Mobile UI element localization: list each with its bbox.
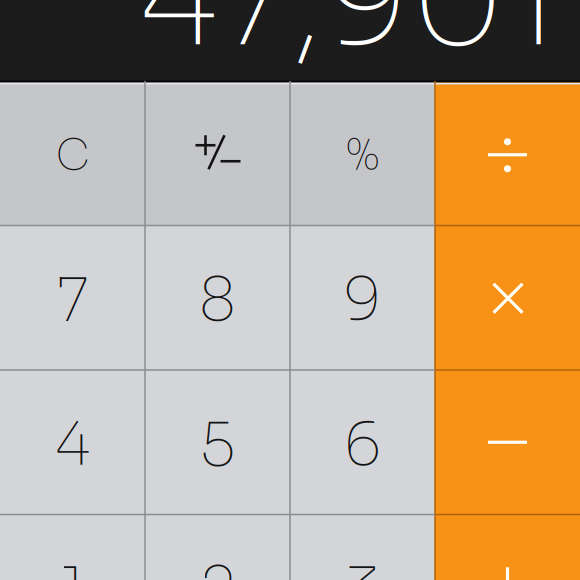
staticText: C: [55, 128, 89, 182]
staticText: 3: [344, 551, 380, 580]
staticText: 6: [343, 406, 382, 482]
staticText: 4: [54, 406, 91, 482]
button[interactable]: Percent: [290, 81, 435, 225]
button[interactable]: Add: [435, 514, 580, 580]
button[interactable]: 5: [145, 370, 290, 514]
staticText: 5: [199, 406, 235, 482]
staticText: 47,901: [137, 0, 560, 83]
staticText: 2: [199, 551, 235, 580]
button[interactable]: 1: [0, 514, 145, 580]
button[interactable]: 2: [145, 514, 290, 580]
staticText: 7: [56, 262, 89, 337]
button[interactable]: Multiply: [435, 225, 580, 370]
button[interactable]: Divide: [435, 81, 580, 225]
button[interactable]: 8: [145, 225, 290, 370]
button[interactable]: 9: [290, 225, 435, 370]
button[interactable]: Clear: [0, 81, 145, 225]
staticText: %: [345, 128, 379, 182]
staticText: 8: [199, 262, 236, 337]
staticText: 9: [343, 262, 382, 337]
button[interactable]: Plus minus: [145, 81, 290, 225]
staticText: 1: [60, 551, 84, 580]
button[interactable]: Subtract: [435, 370, 580, 514]
button[interactable]: 6: [290, 370, 435, 514]
button[interactable]: 7: [0, 225, 145, 370]
button[interactable]: 4: [0, 370, 145, 514]
button[interactable]: 3: [290, 514, 435, 580]
